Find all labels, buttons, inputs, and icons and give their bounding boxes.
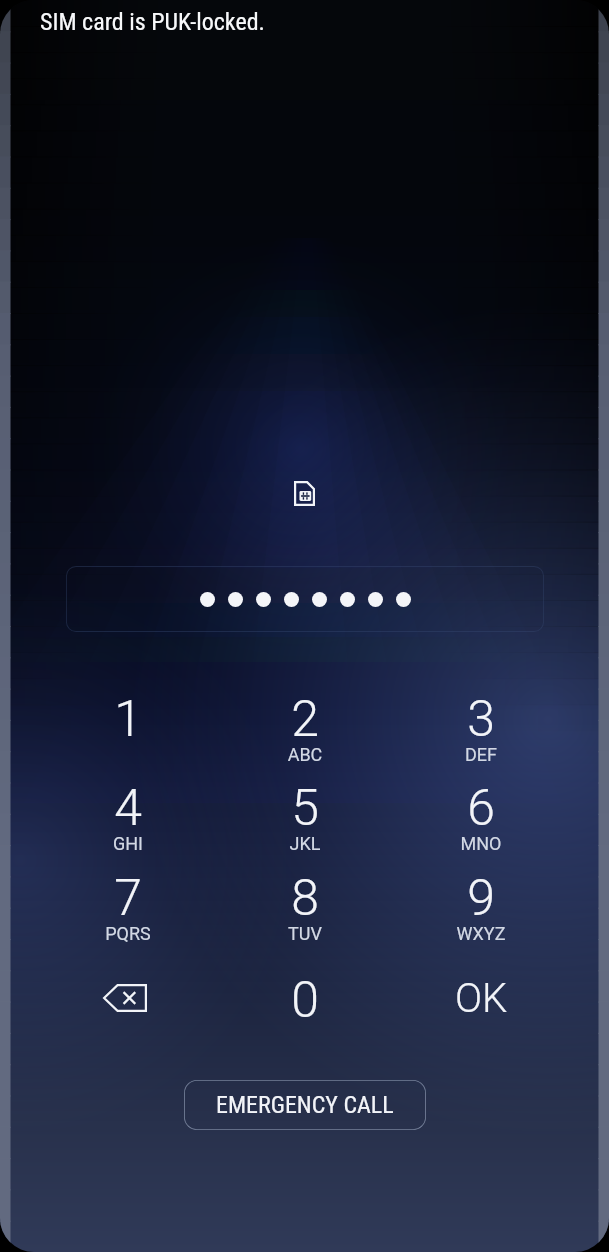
staticText: 1: [40, 690, 216, 749]
staticText: TUV: [217, 923, 393, 944]
button[interactable]: 3: [393, 673, 569, 763]
staticText: WXYZ: [393, 923, 569, 944]
staticText: DEF: [393, 744, 569, 765]
staticText: ABC: [217, 744, 393, 765]
button[interactable]: 9: [393, 852, 569, 942]
staticText: 4: [40, 779, 216, 838]
staticText: 6: [393, 779, 569, 838]
staticText: 0: [217, 971, 393, 1030]
button[interactable]: 0: [217, 954, 393, 1044]
button[interactable]: 8: [217, 852, 393, 942]
staticText: 7: [40, 869, 216, 928]
button[interactable]: 1: [40, 673, 216, 763]
button[interactable]: OK: [393, 953, 569, 1043]
button[interactable]: 2: [217, 673, 393, 763]
button[interactable]: 5: [217, 762, 393, 852]
staticText: SIM card is PUK-locked.: [40, 8, 265, 36]
button[interactable]: 4: [40, 762, 216, 852]
staticText: MNO: [393, 833, 569, 854]
button[interactable]: 6: [393, 762, 569, 852]
button[interactable]: 7: [40, 852, 216, 942]
button[interactable]: EMERGENCY CALL: [184, 1080, 426, 1130]
staticText: JKL: [217, 833, 393, 854]
staticText: 5: [217, 779, 393, 838]
staticText: 9: [393, 869, 569, 928]
button[interactable]: PUK code entry: [66, 566, 544, 632]
staticText: 3: [393, 690, 569, 749]
staticText: GHI: [40, 833, 216, 854]
staticText: PQRS: [40, 923, 216, 944]
staticText: OK: [455, 975, 508, 1022]
staticText: EMERGENCY CALL: [216, 1091, 394, 1119]
button[interactable]: Delete: [37, 953, 213, 1043]
staticText: 2: [217, 690, 393, 749]
staticText: 8: [217, 869, 393, 928]
